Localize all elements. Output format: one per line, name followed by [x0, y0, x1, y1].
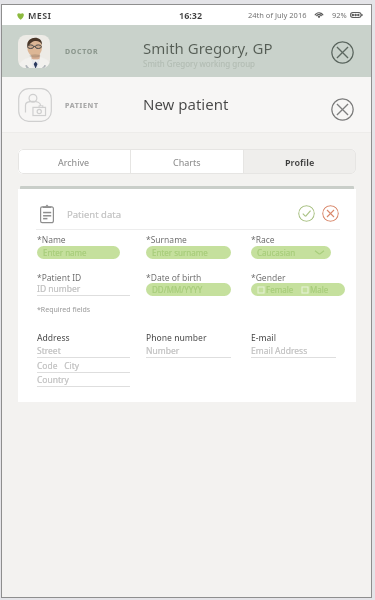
button[interactable]: Close	[331, 41, 354, 64]
staticText: Archive	[58, 156, 90, 168]
staticText: Smith Gregory, GP	[143, 38, 273, 58]
button[interactable]: Female	[258, 284, 294, 295]
staticText: 16:32	[179, 9, 203, 21]
staticText: 24th of July 2016	[248, 10, 307, 20]
button[interactable]: Caucasian	[251, 246, 331, 259]
staticText: Profile	[285, 156, 315, 168]
staticText: Charts	[173, 156, 201, 168]
staticText: *Surname	[146, 234, 187, 246]
button[interactable]: Confirm	[298, 205, 315, 222]
staticText: Enter name	[43, 247, 87, 258]
staticText: DOCTOR	[65, 47, 99, 57]
staticText: *Name	[37, 234, 66, 246]
button[interactable]: Patient photo	[18, 88, 52, 122]
staticText: *Patient ID	[37, 272, 82, 284]
button[interactable]: Enter name	[37, 246, 120, 259]
staticText: New patient	[143, 94, 229, 114]
button[interactable]: Profile	[244, 149, 356, 174]
staticText: E-mail	[251, 332, 276, 344]
staticText: *Required fields	[37, 305, 91, 315]
button[interactable]: Archive	[18, 149, 130, 174]
staticText: *Date of birth	[146, 272, 202, 284]
staticText: *Gender	[251, 272, 286, 284]
staticText: Smith Gregory working group	[143, 58, 256, 69]
staticText: ID number	[37, 283, 81, 295]
staticText: Street	[37, 345, 61, 357]
button[interactable]: Close	[331, 98, 354, 121]
button[interactable]: DD/MM/YYYY	[146, 283, 231, 296]
staticText: Email Address	[251, 345, 308, 357]
staticText: 92%	[332, 10, 347, 20]
button[interactable]: Male	[302, 284, 329, 295]
staticText: PATIENT	[65, 101, 99, 111]
staticText: Caucasian	[257, 247, 296, 258]
button[interactable]: Enter surname	[146, 246, 231, 259]
staticText: Code City	[37, 360, 80, 372]
staticText: Patient data	[67, 208, 122, 221]
staticText: Male	[310, 284, 329, 295]
staticText: Country	[37, 374, 69, 386]
staticText: MESI	[28, 9, 52, 21]
staticText: Female	[266, 284, 294, 295]
staticText: DD/MM/YYYY	[152, 284, 203, 295]
button[interactable]: Cancel	[322, 205, 339, 222]
staticText: *Race	[251, 234, 275, 246]
button[interactable]: Charts	[131, 149, 243, 174]
staticText: Address	[37, 332, 70, 344]
staticText: Enter surname	[152, 247, 208, 258]
staticText: Number	[146, 345, 180, 357]
staticText: Phone number	[146, 332, 207, 344]
